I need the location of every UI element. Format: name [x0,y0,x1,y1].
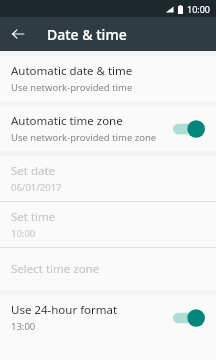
button[interactable]: Toggle [173,308,207,328]
button[interactable]: Automatic date & time [0,56,216,101]
staticText: 10:00 [187,3,211,15]
staticText: 13:00 [11,320,36,333]
staticText: 06/01/2017 [11,181,62,194]
staticText: Use network-provided time [11,81,133,94]
staticText: Automatic date & time [11,63,133,79]
staticText: Select time zone [11,261,100,277]
staticText: Set date [11,163,56,179]
button[interactable]: Set date [0,156,216,201]
staticText: Automatic time zone [11,113,123,129]
button[interactable]: Set time [0,202,216,247]
button[interactable]: Automatic time zone [0,106,216,151]
staticText: Set time [11,209,56,225]
staticText: Use network-provided time zone [11,131,157,144]
button[interactable]: Select time zone [0,248,216,290]
staticText: 10:00 [11,227,36,240]
staticText: Date & time [47,25,127,44]
button[interactable]: Back [6,22,30,46]
button[interactable]: Toggle [173,119,207,139]
button[interactable]: Use 24-hour format [0,295,216,340]
staticText: Use 24-hour format [11,302,118,318]
